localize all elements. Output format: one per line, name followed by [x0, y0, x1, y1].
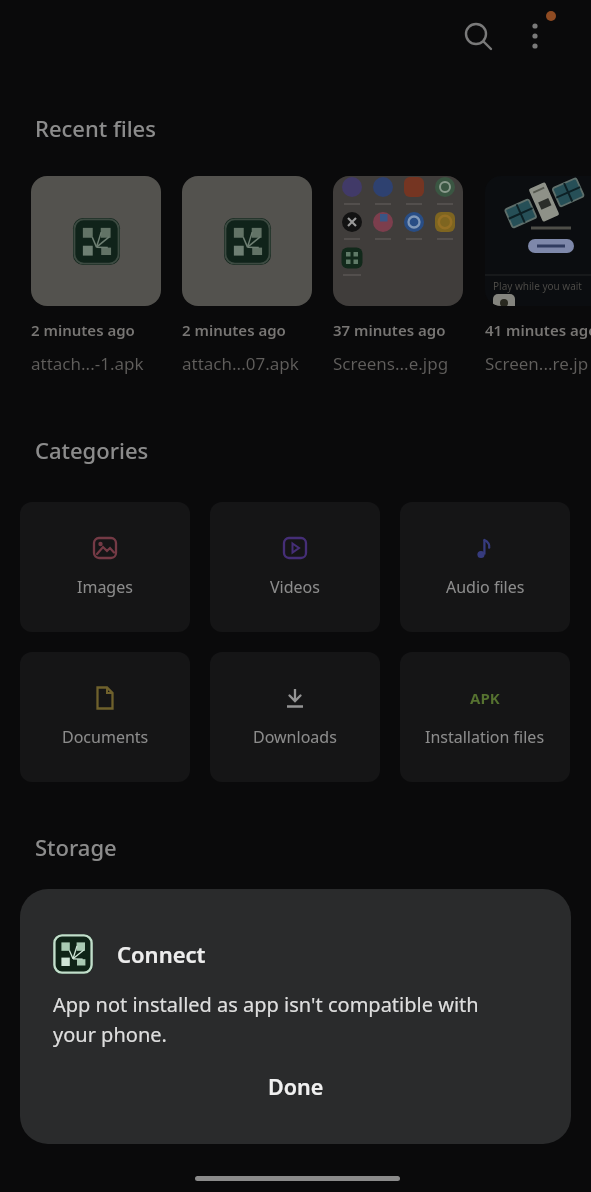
staticText: Storage — [35, 832, 117, 862]
button[interactable] — [511, 12, 559, 60]
staticText: attach...-1.apk — [31, 352, 144, 375]
staticText: Screens...e.jpg — [333, 352, 449, 375]
staticText: Play while you wait — [493, 279, 582, 293]
button[interactable]: Images — [20, 502, 190, 632]
button[interactable]: Play while you wait — [485, 176, 591, 306]
staticText: Images — [77, 576, 133, 598]
staticText: 41 minutes ago — [485, 320, 591, 340]
staticText: Installation files — [425, 726, 545, 748]
staticText: Categories — [35, 435, 149, 465]
staticText: APK — [470, 688, 500, 708]
button[interactable] — [31, 176, 161, 306]
button[interactable]: Videos — [210, 502, 380, 632]
button[interactable] — [182, 176, 312, 306]
staticText: Videos — [270, 576, 320, 598]
staticText: 37 minutes ago — [333, 320, 446, 340]
staticText: attach...07.apk — [182, 352, 299, 375]
staticText: Downloads — [253, 726, 337, 748]
staticText: Recent files — [35, 113, 156, 143]
staticText: Audio files — [446, 576, 525, 598]
button[interactable] — [454, 12, 502, 60]
button[interactable]: Done — [252, 1066, 340, 1107]
staticText: 2 minutes ago — [31, 320, 135, 340]
staticText: App not installed as app isn't compatibl… — [53, 991, 479, 1048]
staticText: 2 minutes ago — [182, 320, 286, 340]
button[interactable] — [333, 176, 463, 306]
staticText: Done — [268, 1072, 324, 1101]
button[interactable]: Audio files — [400, 502, 570, 632]
button[interactable]: Documents — [20, 652, 190, 782]
staticText: Connect — [117, 939, 206, 969]
button[interactable]: Downloads — [210, 652, 380, 782]
staticText: Documents — [62, 726, 149, 748]
button[interactable]: APK — [400, 652, 570, 782]
staticText: Screen...re.jp — [485, 352, 589, 375]
